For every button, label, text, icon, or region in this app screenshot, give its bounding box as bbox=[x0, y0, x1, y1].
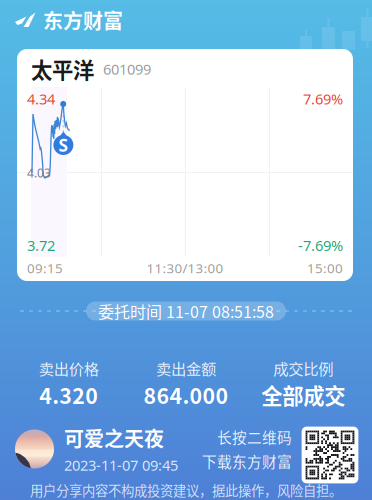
staticText: 东方财富 bbox=[43, 5, 123, 34]
staticText: 3.72 bbox=[27, 235, 55, 255]
button[interactable]: 东方财富 bbox=[0, 0, 372, 40]
staticText: 卖出金额 bbox=[156, 357, 216, 379]
staticText: 4.320 bbox=[39, 379, 98, 410]
staticText: S bbox=[58, 133, 68, 156]
staticText: 用户分享内容不构成投资建议，据此操作，风险自担。 bbox=[30, 480, 342, 500]
staticText: 4.34 bbox=[27, 89, 55, 108]
staticText: 2023-11-07 09:45 bbox=[64, 455, 178, 475]
staticText: 09:15 bbox=[27, 259, 63, 277]
staticText: 4.03 bbox=[27, 165, 51, 181]
staticText: 长按二维码 bbox=[217, 426, 292, 447]
staticText: 15:00 bbox=[307, 259, 343, 277]
button[interactable]: 可爱之天夜 bbox=[15, 423, 178, 475]
staticText: 卖出价格 bbox=[39, 357, 99, 379]
staticText: 成交比例 bbox=[273, 357, 333, 379]
staticText: 太平洋 bbox=[31, 54, 94, 84]
staticText: 委托时间 11-07 08:51:58 bbox=[98, 299, 274, 323]
button[interactable]: 太平洋 bbox=[17, 49, 353, 281]
staticText: 下载东方财富 bbox=[202, 450, 292, 472]
staticText: 601099 bbox=[103, 59, 151, 79]
staticText: 864.000 bbox=[143, 379, 228, 410]
staticText: 可爱之天夜 bbox=[64, 423, 164, 452]
button[interactable]: 长按二维码下载东方财富 bbox=[202, 421, 358, 477]
staticText: 7.69% bbox=[303, 89, 343, 108]
staticText: 11:30/13:00 bbox=[146, 259, 223, 277]
staticText: 全部成交 bbox=[261, 379, 345, 410]
staticText: -7.69% bbox=[298, 235, 343, 255]
